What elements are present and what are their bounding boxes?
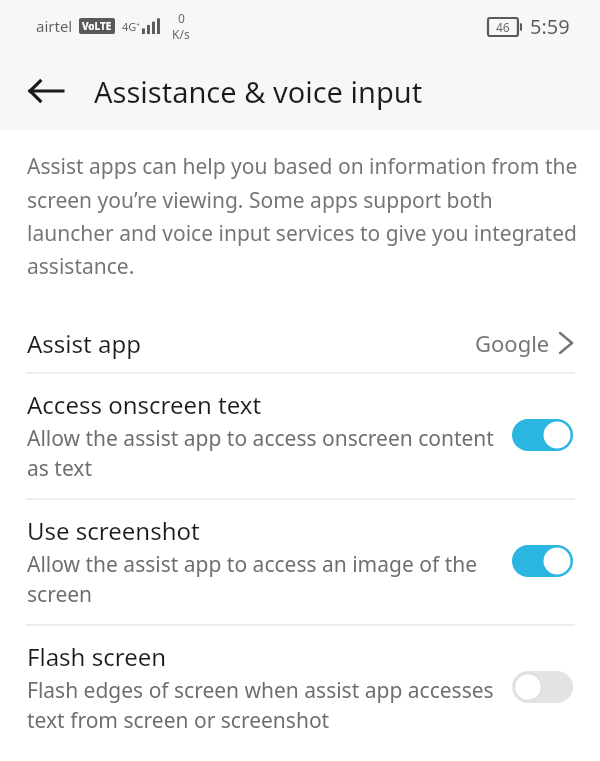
staticText: Allow the assist app to access onscreen … <box>27 424 496 482</box>
button[interactable]: Toggle on <box>512 419 573 451</box>
button[interactable]: Access onscreen text <box>0 374 600 498</box>
button[interactable]: Toggle off <box>512 671 573 703</box>
staticText: VoLTE <box>82 19 112 33</box>
staticText: Assist app <box>27 327 475 360</box>
staticText: Flash edges of screen when assist app ac… <box>27 676 496 734</box>
staticText: airtel <box>36 16 73 36</box>
staticText: Assist apps can help you based on inform… <box>27 152 578 280</box>
button[interactable]: Use screenshot <box>0 500 600 624</box>
staticText: 46 <box>496 19 510 35</box>
staticText: Allow the assist app to access an image … <box>27 550 496 608</box>
staticText: Access onscreen text <box>27 388 262 421</box>
staticText: K/s <box>172 26 190 42</box>
button[interactable]: Back <box>14 59 78 123</box>
staticText: Google <box>475 328 550 358</box>
button[interactable]: Assist app <box>0 314 600 372</box>
staticText: 5:59 <box>530 13 570 40</box>
button[interactable]: Flash screen <box>0 626 600 750</box>
button[interactable]: Toggle on <box>512 545 573 577</box>
staticText: 4G⁺ <box>122 19 141 34</box>
staticText: Flash screen <box>27 640 167 673</box>
staticText: Use screenshot <box>27 514 200 547</box>
staticText: Assistance & voice input <box>94 72 423 111</box>
staticText: 0 <box>178 10 185 26</box>
